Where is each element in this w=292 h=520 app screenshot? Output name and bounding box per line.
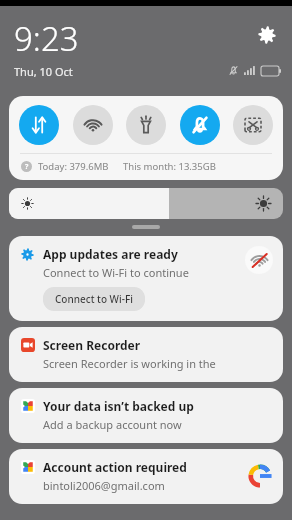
button[interactable]: Your data isn’t backed up [9,388,283,443]
button[interactable]: Settings [254,22,280,48]
staticText: ? [25,162,29,172]
button[interactable]: Expand [132,225,160,229]
button[interactable]: Connect to Wi-Fi [43,287,145,311]
button[interactable]: Mobile data [19,105,59,145]
staticText: Connect to Wi-Fi to continue [43,265,189,280]
button[interactable]: Brightness [9,188,283,219]
staticText: bintoli2006@gmail.com [43,478,165,493]
staticText: Today: 379.6MB [38,160,109,173]
staticText: This month: 13.35GB [123,160,216,173]
button[interactable]: Screen Recorder [9,327,283,382]
staticText: Connect to Wi-Fi [55,292,133,306]
staticText: Screen Recorder is working in the backgr… [43,356,273,371]
button[interactable]: Screenshot [233,105,273,145]
staticText: 9:23 [14,16,79,61]
button[interactable]: Silent [180,105,220,145]
staticText: Account action required [43,459,187,475]
staticText: Add a backup account now [43,417,182,432]
staticText: Screen Recorder [43,337,141,353]
button[interactable]: Flashlight [126,105,166,145]
button[interactable]: Wi-Fi [73,105,113,145]
button[interactable]: ? [21,160,283,173]
button[interactable]: Account action required [9,449,283,504]
staticText: Thu, 10 Oct [14,64,73,79]
button[interactable]: App updates are ready [9,236,283,321]
staticText: App updates are ready [43,246,178,262]
staticText: Your data isn’t backed up [43,398,194,414]
